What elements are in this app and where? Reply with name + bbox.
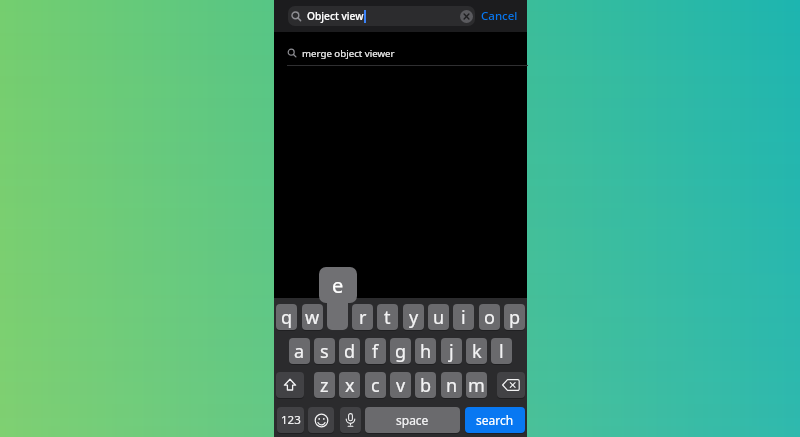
button[interactable]	[497, 372, 525, 398]
button[interactable]: m	[466, 372, 487, 398]
button[interactable]	[340, 407, 361, 433]
staticText: x	[345, 373, 355, 398]
staticText: q	[281, 305, 293, 330]
button[interactable]: y	[403, 304, 424, 330]
button[interactable]: d	[339, 338, 360, 364]
button[interactable]: merge object viewer	[274, 41, 527, 65]
button[interactable]: c	[365, 372, 386, 398]
staticText: merge object viewer	[302, 47, 395, 60]
staticText: n	[446, 373, 458, 398]
button[interactable]: j	[441, 338, 462, 364]
staticText: i	[461, 305, 466, 330]
button[interactable]: b	[415, 372, 436, 398]
staticText: e	[332, 272, 344, 299]
button[interactable]: z	[314, 372, 335, 398]
staticText: 123	[281, 412, 301, 428]
staticText: w	[305, 305, 320, 330]
button[interactable]: x	[339, 372, 360, 398]
button[interactable]: t	[377, 304, 398, 330]
button[interactable]: Object view	[288, 6, 475, 26]
staticText: d	[344, 339, 356, 364]
button[interactable]: p	[504, 304, 525, 330]
staticText: g	[395, 339, 407, 364]
staticText: h	[420, 339, 432, 364]
button[interactable]: u	[428, 304, 449, 330]
button[interactable]: g	[390, 338, 411, 364]
staticText: a	[294, 339, 305, 364]
staticText: p	[509, 305, 521, 330]
button[interactable]: 123	[277, 407, 304, 433]
button[interactable]: v	[390, 372, 411, 398]
button[interactable]: search	[465, 407, 525, 433]
staticText: j	[449, 339, 454, 364]
button[interactable]: k	[466, 338, 487, 364]
button[interactable]	[308, 407, 334, 433]
staticText: y	[409, 305, 419, 330]
button[interactable]: l	[491, 338, 512, 364]
staticText: z	[320, 373, 329, 398]
staticText: b	[420, 373, 432, 398]
button[interactable]: n	[441, 372, 462, 398]
staticText: Object view	[307, 9, 364, 23]
button[interactable]: s	[314, 338, 335, 364]
staticText: t	[384, 305, 391, 330]
staticText: s	[320, 339, 329, 364]
staticText: k	[472, 339, 482, 364]
button[interactable]: q	[276, 304, 297, 330]
button[interactable]: o	[479, 304, 500, 330]
staticText: c	[371, 373, 380, 398]
button[interactable]: w	[302, 304, 323, 330]
button[interactable]: f	[365, 338, 386, 364]
staticText: o	[484, 305, 495, 330]
button[interactable]: Cancel	[474, 0, 524, 32]
button[interactable]: e	[319, 267, 357, 303]
button[interactable]	[276, 372, 304, 398]
button[interactable]: r	[352, 304, 373, 330]
button[interactable]: space	[365, 407, 460, 433]
button[interactable]: a	[289, 338, 310, 364]
staticText: search	[476, 412, 514, 428]
button[interactable]: i	[453, 304, 474, 330]
staticText: f	[372, 339, 379, 364]
staticText: u	[433, 305, 445, 330]
staticText: Cancel	[481, 8, 518, 24]
staticText: v	[396, 373, 406, 398]
button[interactable]	[460, 10, 473, 23]
staticText: r	[359, 305, 367, 330]
staticText: m	[468, 373, 485, 398]
staticText: l	[499, 339, 504, 364]
staticText: space	[396, 412, 429, 428]
button[interactable]: h	[415, 338, 436, 364]
